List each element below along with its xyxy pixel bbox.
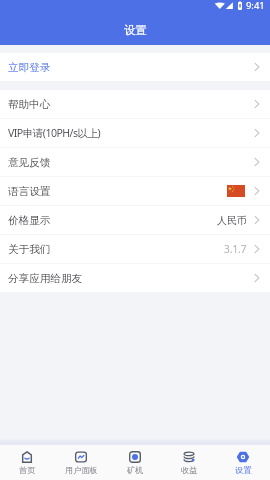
staticText: 用户面板 — [65, 465, 98, 475]
staticText: 收益 — [181, 465, 198, 475]
button[interactable]: 意见反馈 — [0, 148, 270, 176]
staticText: 9:41 — [246, 0, 265, 12]
staticText: 设置 — [235, 465, 252, 475]
other: 设置 — [237, 451, 249, 463]
button[interactable]: 分享应用给朋友 — [0, 264, 270, 292]
button[interactable]: 用户面板 — [54, 445, 108, 480]
staticText: 人民币 — [217, 214, 247, 227]
staticText: 关于我们 — [8, 243, 51, 256]
staticText: 3.1.7 — [224, 242, 247, 256]
button[interactable]: 语言设置 — [0, 177, 270, 205]
staticText: 首页 — [19, 465, 36, 475]
button[interactable]: 设置 — [216, 445, 270, 480]
staticText: 语言设置 — [8, 185, 51, 198]
button[interactable]: 关于我们 — [0, 235, 270, 263]
other: 用户面板 — [75, 451, 87, 463]
button[interactable]: 首页 — [0, 445, 54, 480]
staticText: 设置 — [124, 23, 147, 37]
button[interactable]: VIP申请(10PH/s以上) — [0, 119, 270, 147]
staticText: 分享应用给朋友 — [8, 272, 83, 285]
staticText: 立即登录 — [8, 61, 51, 74]
other: 首页 — [21, 451, 33, 463]
staticText: 价格显示 — [8, 214, 51, 227]
staticText: VIP申请(10PH/s以上) — [8, 126, 101, 140]
other: 收益 — [183, 451, 195, 463]
button[interactable]: 价格显示 — [0, 206, 270, 234]
staticText: 矿机 — [127, 465, 144, 475]
button[interactable]: 收益 — [162, 445, 216, 480]
other: 矿机 — [129, 451, 141, 463]
staticText: 帮助中心 — [8, 98, 51, 111]
button[interactable]: 立即登录 — [0, 53, 270, 81]
button[interactable]: 帮助中心 — [0, 90, 270, 118]
button[interactable]: 矿机 — [108, 445, 162, 480]
staticText: 意见反馈 — [8, 156, 51, 169]
